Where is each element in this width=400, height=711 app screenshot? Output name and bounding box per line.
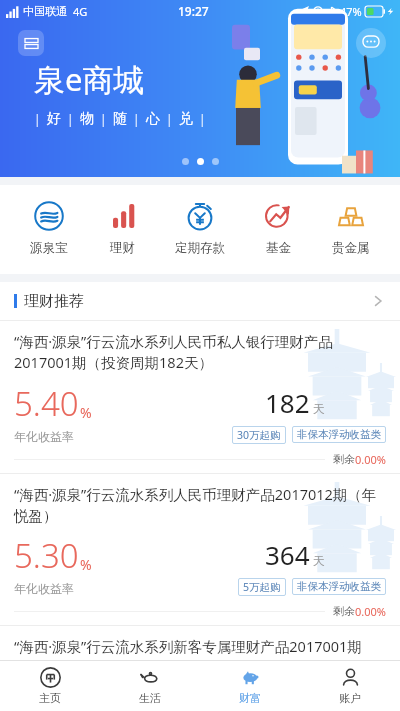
staticText: 物 — [80, 110, 94, 128]
button[interactable]: 贵金属 — [324, 199, 378, 258]
button[interactable]: 定期存款 — [167, 199, 233, 258]
button[interactable]: “海西·源泉”行云流水系列人民币私人银行理财产品2017001期（投资周期182… — [0, 321, 400, 473]
staticText: 中国联通 — [23, 4, 67, 18]
staticText: 4G — [73, 4, 88, 19]
staticText: 非保本浮动收益类 — [297, 428, 381, 441]
staticText: 贵金属 — [332, 240, 370, 256]
staticText: 主页 — [39, 691, 61, 705]
staticText: 年化收益率 — [14, 429, 74, 444]
staticText: % — [80, 555, 92, 574]
staticText: 30万起购 — [237, 428, 281, 442]
staticText: 理财 — [110, 240, 135, 256]
staticText: 剩余 — [333, 604, 355, 618]
button[interactable]: 主页 — [0, 661, 100, 711]
staticText: 5.40 — [14, 381, 79, 426]
staticText: “海西·源泉”行云流水系列人民币理财产品2017012期（年悦盈） — [14, 484, 386, 525]
staticText: 5万起购 — [243, 580, 281, 594]
staticText: 5.30 — [14, 533, 79, 578]
staticText: 兑 — [179, 110, 193, 128]
staticText: “海西·源泉”行云流水系列新客专属理财产品2017001期（投资周期90天） — [14, 636, 386, 660]
staticText: 年化收益率 — [14, 581, 74, 596]
button[interactable]: 生活 — [100, 661, 200, 711]
staticText: % — [80, 403, 92, 422]
button[interactable]: “海西·源泉”行云流水系列人民币理财产品2017012期（年悦盈） — [0, 474, 400, 625]
staticText: 19:27 — [178, 3, 209, 19]
staticText: 0.00% — [355, 604, 386, 619]
button[interactable]: 理财 — [99, 199, 145, 258]
staticText: 天 — [310, 400, 326, 416]
staticText: | — [100, 111, 107, 127]
staticText: | — [199, 111, 206, 127]
staticText: 基金 — [266, 240, 291, 256]
button[interactable]: 理财推荐 — [0, 282, 400, 320]
staticText: 随 — [113, 110, 127, 128]
button[interactable]: 账户 — [300, 661, 400, 711]
staticText: 天 — [310, 552, 326, 568]
staticText: 定期存款 — [175, 240, 225, 256]
staticText: 财富 — [239, 691, 261, 705]
button[interactable]: 基金 — [255, 199, 301, 258]
button[interactable]: Menu — [18, 30, 44, 56]
staticText: 364 — [265, 537, 310, 572]
button[interactable]: Chat — [356, 28, 386, 58]
staticText: “海西·源泉”行云流水系列人民币私人银行理财产品2017001期（投资周期182… — [14, 331, 386, 373]
staticText: 账户 — [339, 691, 361, 705]
staticText: | — [166, 111, 173, 127]
staticText: 47% — [340, 4, 362, 19]
staticText: 泉e商城 — [34, 58, 145, 100]
staticText: | — [34, 111, 41, 127]
staticText: 源泉宝 — [30, 240, 68, 256]
staticText: 182 — [265, 385, 310, 420]
staticText: 好 — [47, 110, 61, 128]
staticText: 理财推荐 — [24, 292, 84, 311]
staticText: 0.00% — [355, 452, 386, 467]
staticText: | — [133, 111, 140, 127]
staticText: 生活 — [139, 691, 161, 705]
button[interactable]: 源泉宝 — [22, 199, 76, 258]
button[interactable]: 财富 — [200, 661, 300, 711]
staticText: | — [67, 111, 74, 127]
staticText: 心 — [146, 110, 160, 128]
staticText: 剩余 — [333, 452, 355, 466]
staticText: 非保本浮动收益类 — [297, 580, 381, 593]
